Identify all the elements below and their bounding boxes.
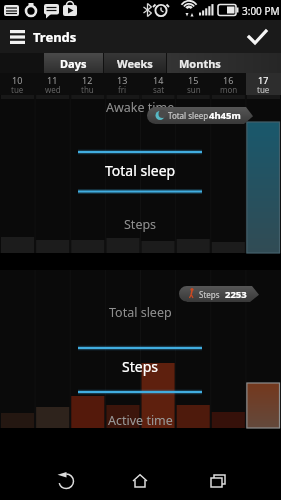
button[interactable]: 17 xyxy=(246,73,281,95)
staticText: Trends xyxy=(33,28,77,46)
staticText: Steps xyxy=(122,357,158,376)
staticText: sun xyxy=(187,84,201,95)
button[interactable] xyxy=(122,466,158,496)
staticText: 16 xyxy=(223,74,234,86)
button[interactable] xyxy=(200,466,236,496)
staticText: Awake time xyxy=(106,99,175,116)
staticText: Days xyxy=(60,56,87,71)
staticText: wed xyxy=(45,84,61,95)
staticText: mon xyxy=(220,84,238,95)
staticText: 2253 xyxy=(225,288,247,301)
button[interactable] xyxy=(240,24,276,50)
staticText: 4h45m xyxy=(209,109,241,122)
staticText: 11 xyxy=(47,74,58,86)
button[interactable] xyxy=(47,466,83,496)
button[interactable]: 15 xyxy=(176,73,211,95)
staticText: 12 xyxy=(82,74,93,86)
staticText: tue xyxy=(257,84,270,95)
staticText: sat xyxy=(153,84,165,95)
button[interactable]: 16 xyxy=(211,73,246,95)
staticText: Total sleep xyxy=(109,304,172,321)
staticText: Weeks xyxy=(117,56,153,71)
staticText: 15 xyxy=(188,74,199,86)
staticText: Steps xyxy=(124,216,157,233)
staticText: 17 xyxy=(258,74,269,86)
staticText: Months xyxy=(179,56,221,71)
button[interactable]: 14 xyxy=(141,73,176,95)
button[interactable]: Weeks xyxy=(104,53,166,73)
staticText: tue xyxy=(11,84,24,95)
staticText: 10 xyxy=(12,74,23,86)
button[interactable]: Months xyxy=(167,53,281,73)
staticText: fri xyxy=(118,84,127,95)
staticText: 14 xyxy=(153,74,164,86)
button[interactable]: Days xyxy=(44,53,103,73)
button[interactable]: 10 xyxy=(0,73,35,95)
staticText: Active time xyxy=(108,412,173,429)
button[interactable]: 11 xyxy=(35,73,70,95)
button[interactable]: 12 xyxy=(70,73,105,95)
button[interactable]: 13 xyxy=(105,73,140,95)
staticText: Total sleep xyxy=(105,161,176,180)
staticText: Total sleep xyxy=(168,110,209,121)
staticText: Steps xyxy=(199,289,220,300)
staticText: 3:00 PM xyxy=(242,4,280,18)
button[interactable] xyxy=(4,25,30,49)
staticText: thu xyxy=(81,84,94,95)
staticText: 13 xyxy=(117,74,128,86)
